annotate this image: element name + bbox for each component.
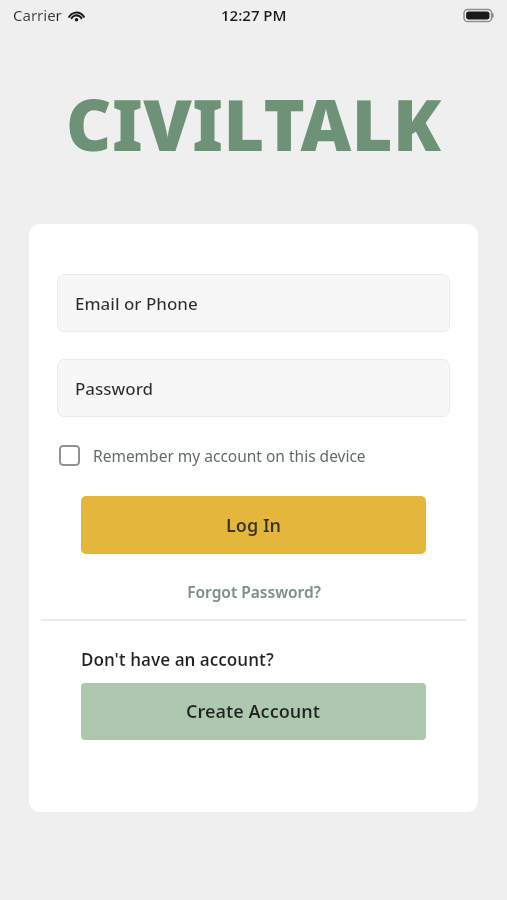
staticText: Carrier xyxy=(13,5,62,25)
button[interactable]: Log In xyxy=(81,496,426,554)
button[interactable]: Password xyxy=(57,359,450,417)
staticText: Password xyxy=(75,377,154,400)
button[interactable]: Create Account xyxy=(81,683,426,740)
button[interactable]: Remember my account on this device xyxy=(57,441,368,470)
staticText: Remember my account on this device xyxy=(93,445,366,466)
button[interactable]: Email or Phone xyxy=(57,274,450,332)
staticText: 12:27 PM xyxy=(221,5,287,25)
staticText: Don't have an account? xyxy=(81,648,274,671)
staticText: Log In xyxy=(226,513,282,538)
button[interactable]: Forgot Password? xyxy=(177,578,331,605)
staticText: Create Account xyxy=(186,699,321,724)
staticText: Email or Phone xyxy=(75,292,198,315)
staticText: CIVILTALK xyxy=(66,76,442,171)
